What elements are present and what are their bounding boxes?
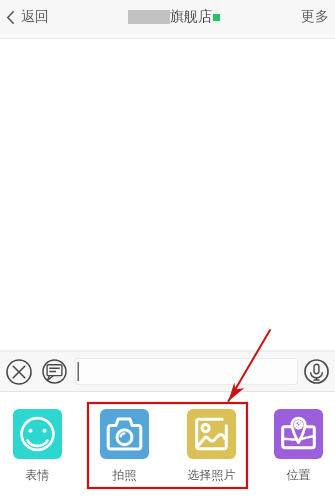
staticText: 位置 <box>274 467 323 482</box>
button[interactable]: 表情 <box>13 409 62 482</box>
staticText: 旗舰店 <box>170 8 212 26</box>
staticText: 表情 <box>13 467 62 482</box>
staticText: 返回 <box>21 8 49 26</box>
staticText: 选择照片 <box>187 467 236 482</box>
button[interactable]: Quick replies <box>38 355 71 388</box>
button[interactable] <box>75 358 298 385</box>
button[interactable]: 选择照片 <box>187 409 236 482</box>
button[interactable]: 拍照 <box>100 409 149 482</box>
button[interactable]: 更多 <box>291 2 335 32</box>
button[interactable]: 返回 <box>0 4 55 30</box>
button[interactable]: 位置 <box>274 409 323 482</box>
staticText: 拍照 <box>100 467 149 482</box>
button[interactable]: Voice input <box>298 353 335 390</box>
staticText: 更多 <box>301 8 329 26</box>
button[interactable]: Close <box>0 353 38 391</box>
